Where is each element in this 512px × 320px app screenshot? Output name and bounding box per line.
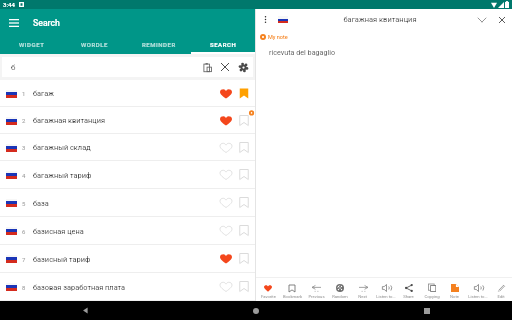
staticText: базисная цена — [33, 227, 216, 236]
button[interactable]: 6 — [0, 217, 255, 245]
button[interactable]: WIDGET — [0, 36, 63, 54]
button[interactable]: Bookmark — [235, 245, 253, 273]
staticText: Listen to... — [376, 294, 396, 299]
button[interactable]: Random — [328, 278, 351, 301]
button[interactable]: Listen to... — [466, 278, 489, 301]
staticText: 6 — [22, 228, 26, 235]
button[interactable]: Paste from clipboard — [198, 58, 216, 76]
button[interactable]: Back — [0, 301, 170, 320]
staticText: ricevuta del bagaglio — [269, 48, 336, 56]
button[interactable]: Favorite — [216, 134, 235, 161]
staticText: 2 — [22, 117, 26, 124]
staticText: Next — [358, 294, 367, 299]
button[interactable]: Bookmark — [235, 161, 253, 189]
button[interactable]: Close — [492, 9, 511, 30]
staticText: Random — [332, 294, 348, 299]
staticText: Copying — [424, 294, 440, 299]
button[interactable]: 2 — [0, 107, 255, 134]
staticText: REMINDER — [142, 41, 176, 48]
staticText: 3:44 — [3, 1, 15, 8]
button[interactable]: Next — [351, 278, 374, 301]
button[interactable]: WORDLE — [63, 36, 127, 54]
button[interactable]: SEARCH — [191, 36, 255, 54]
staticText: Note — [450, 294, 459, 299]
staticText: Previous — [308, 294, 325, 299]
button[interactable]: Bookmark — [235, 273, 253, 301]
button[interactable]: Listen to... — [374, 278, 397, 301]
button[interactable]: Copying — [420, 278, 443, 301]
button[interactable]: My note — [260, 34, 288, 40]
button[interactable]: Bookmark — [235, 80, 253, 107]
button[interactable]: Favorite — [216, 80, 235, 107]
button[interactable]: Favorite — [216, 107, 235, 134]
button[interactable]: 4 — [0, 161, 255, 189]
button[interactable]: Edit — [489, 278, 512, 301]
staticText: 5 — [22, 200, 26, 207]
button[interactable]: 3 — [0, 134, 255, 161]
staticText: багажный тариф — [33, 171, 216, 180]
staticText: Favorite — [261, 294, 276, 299]
staticText: 7 — [22, 256, 26, 263]
button[interactable]: 7 — [0, 245, 255, 273]
button[interactable]: REMINDER — [127, 36, 191, 54]
button[interactable]: Recents — [341, 301, 512, 320]
staticText: б — [11, 63, 16, 72]
button[interactable]: Menu — [0, 9, 27, 36]
button[interactable]: Bookmark — [235, 134, 253, 161]
staticText: 1 — [22, 90, 26, 97]
button[interactable]: Bookmark — [235, 189, 253, 217]
staticText: базовая заработная плата — [33, 283, 216, 292]
button[interactable]: 8 — [0, 273, 255, 301]
staticText: Share — [403, 294, 414, 299]
button[interactable]: 5 — [0, 189, 255, 217]
button[interactable]: Bookmark — [280, 278, 304, 301]
staticText: багажная квитанция — [33, 116, 216, 125]
button[interactable]: Home — [170, 301, 341, 320]
staticText: багажная квитанция — [288, 15, 472, 24]
staticText: базисный тариф — [33, 255, 216, 264]
button[interactable]: Favorite — [216, 245, 235, 273]
button[interactable]: Note — [443, 278, 466, 301]
staticText: багаж — [33, 89, 216, 98]
button[interactable]: Favorite — [216, 161, 235, 189]
staticText: WORDLE — [81, 41, 109, 48]
staticText: 4 — [22, 172, 26, 179]
button[interactable]: More options — [256, 9, 275, 30]
button[interactable]: Clear — [216, 58, 234, 76]
staticText: SEARCH — [210, 41, 237, 48]
staticText: Bookmark — [283, 294, 302, 299]
button[interactable]: Settings — [234, 58, 252, 76]
button[interactable]: Favorite — [216, 273, 235, 301]
button[interactable]: Favorite — [256, 278, 280, 301]
button[interactable]: Favorite — [216, 217, 235, 245]
staticText: 8 — [22, 284, 26, 291]
button[interactable]: Favorite — [216, 189, 235, 217]
staticText: My note — [268, 34, 288, 40]
button[interactable]: б — [2, 57, 253, 77]
staticText: WIDGET — [19, 41, 45, 48]
button[interactable]: Share — [397, 278, 420, 301]
button[interactable]: Bookmark — [235, 107, 253, 134]
staticText: 3 — [22, 144, 26, 151]
button[interactable]: 1 — [0, 80, 255, 107]
staticText: база — [33, 199, 216, 208]
staticText: Listen to... — [468, 294, 488, 299]
button[interactable]: Collapse — [472, 9, 492, 30]
staticText: Search — [33, 18, 60, 28]
button[interactable]: Previous — [304, 278, 328, 301]
staticText: багажный склад — [33, 143, 216, 152]
button[interactable]: Bookmark — [235, 217, 253, 245]
staticText: Edit — [497, 294, 505, 299]
